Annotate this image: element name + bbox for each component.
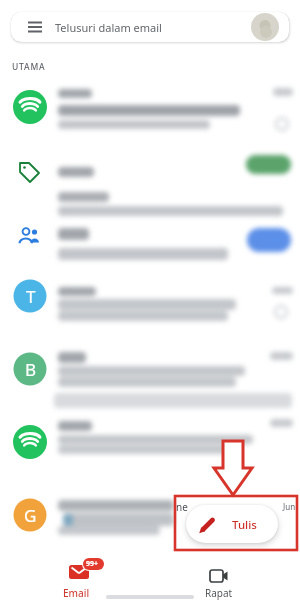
staticText: Tulis <box>232 517 257 533</box>
button[interactable] <box>0 333 300 406</box>
staticText: UTAMA <box>12 61 46 73</box>
staticText: Jun <box>283 501 296 512</box>
button[interactable]: Tulis <box>186 505 278 543</box>
button[interactable] <box>0 268 300 333</box>
staticText: Telusuri dalam email <box>55 20 162 35</box>
staticText: ne <box>176 500 188 514</box>
staticText: T <box>26 285 36 308</box>
staticText: 99+ <box>86 559 99 569</box>
button[interactable] <box>0 208 300 268</box>
button[interactable]: Telusuri dalam email <box>11 12 289 42</box>
staticText: G <box>24 504 37 527</box>
staticText: B <box>25 358 37 381</box>
staticText: Rapat <box>205 586 233 600</box>
button[interactable] <box>0 478 300 552</box>
button[interactable] <box>0 75 300 140</box>
button[interactable] <box>0 406 300 478</box>
button[interactable]: 99+ <box>48 554 110 602</box>
button[interactable]: Rapat <box>188 554 250 602</box>
button[interactable] <box>0 140 300 208</box>
staticText: Email <box>63 586 90 600</box>
